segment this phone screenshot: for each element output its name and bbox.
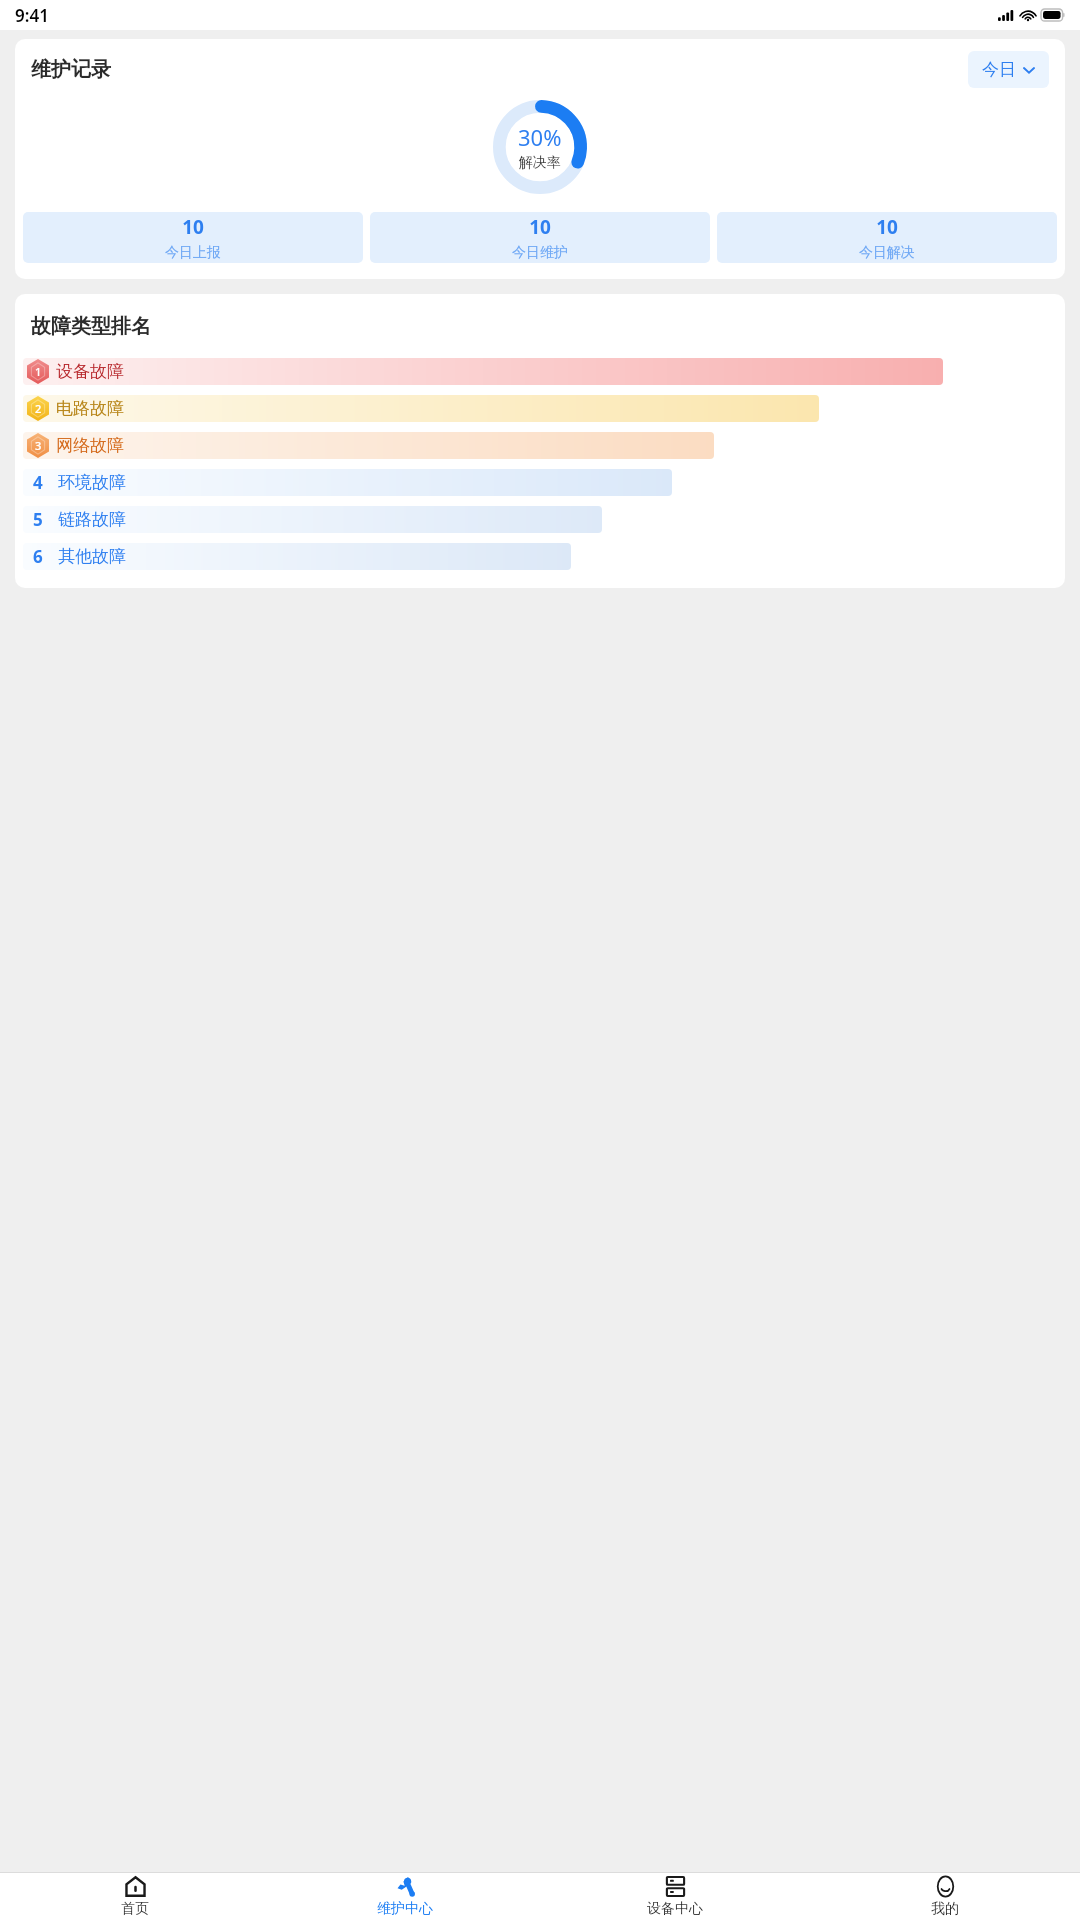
staticText: 10 — [529, 214, 551, 240]
staticText: 10 — [182, 214, 204, 240]
staticText: 其他故障 — [58, 546, 126, 567]
staticText: 10 — [876, 214, 898, 240]
staticText: 电路故障 — [56, 398, 124, 419]
staticText: 今日 — [982, 59, 1016, 80]
staticText: 30% — [518, 122, 562, 152]
button[interactable]: 10 — [370, 212, 710, 263]
staticText: 6 — [33, 545, 43, 568]
button[interactable]: 首页 — [0, 1873, 270, 1920]
staticText: 我的 — [931, 1900, 959, 1918]
staticText: 解决率 — [519, 154, 561, 172]
other: 我的 — [935, 1876, 956, 1897]
staticText: 环境故障 — [58, 472, 126, 493]
staticText: 维护记录 — [31, 57, 111, 82]
staticText: 设备中心 — [647, 1900, 703, 1918]
staticText: 维护中心 — [377, 1900, 433, 1918]
staticText: 5 — [33, 508, 43, 531]
staticText: 首页 — [121, 1900, 149, 1918]
button[interactable]: 3 — [23, 432, 1057, 459]
other: 设备中心 — [665, 1876, 686, 1897]
button[interactable]: 今日 — [968, 51, 1049, 88]
other: 维护中心 — [395, 1876, 416, 1897]
staticText: 9:41 — [15, 4, 49, 27]
staticText: 1 — [35, 364, 42, 379]
other: 首页 — [125, 1876, 146, 1897]
staticText: 网络故障 — [56, 435, 124, 456]
button[interactable]: 维护中心 — [270, 1873, 540, 1920]
staticText: 链路故障 — [58, 509, 126, 530]
button[interactable]: 5 — [23, 506, 1057, 533]
button[interactable]: 2 — [23, 395, 1057, 422]
button[interactable]: 设备中心 — [540, 1873, 810, 1920]
staticText: 2 — [35, 401, 42, 416]
button[interactable]: 10 — [23, 212, 363, 263]
button[interactable]: 1 — [23, 358, 1057, 385]
button[interactable]: 6 — [23, 543, 1057, 570]
staticText: 今日维护 — [512, 244, 568, 262]
button[interactable]: 我的 — [810, 1873, 1080, 1920]
staticText: 设备故障 — [56, 361, 124, 382]
staticText: 3 — [35, 438, 42, 453]
staticText: 故障类型排名 — [31, 314, 151, 339]
staticText: 今日解决 — [859, 244, 915, 262]
staticText: 今日上报 — [165, 244, 221, 262]
staticText: 4 — [33, 471, 43, 494]
button[interactable]: 10 — [717, 212, 1057, 263]
button[interactable]: 4 — [23, 469, 1057, 496]
